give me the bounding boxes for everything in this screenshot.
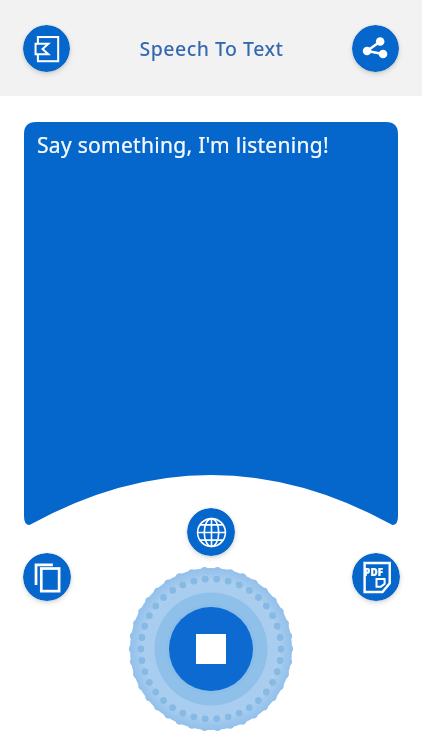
staticText: Speech To Text	[139, 35, 284, 62]
button[interactable]: Language	[187, 508, 235, 556]
button[interactable]: Switch input	[23, 25, 70, 72]
button[interactable]: Share	[352, 25, 399, 72]
button[interactable]: Stop recording	[127, 565, 295, 733]
staticText: Say something, I'm listening!	[37, 131, 329, 160]
button[interactable]: Export as PDF	[352, 553, 400, 601]
button[interactable]: Copy text	[23, 553, 71, 601]
staticText: PDF	[364, 566, 384, 579]
